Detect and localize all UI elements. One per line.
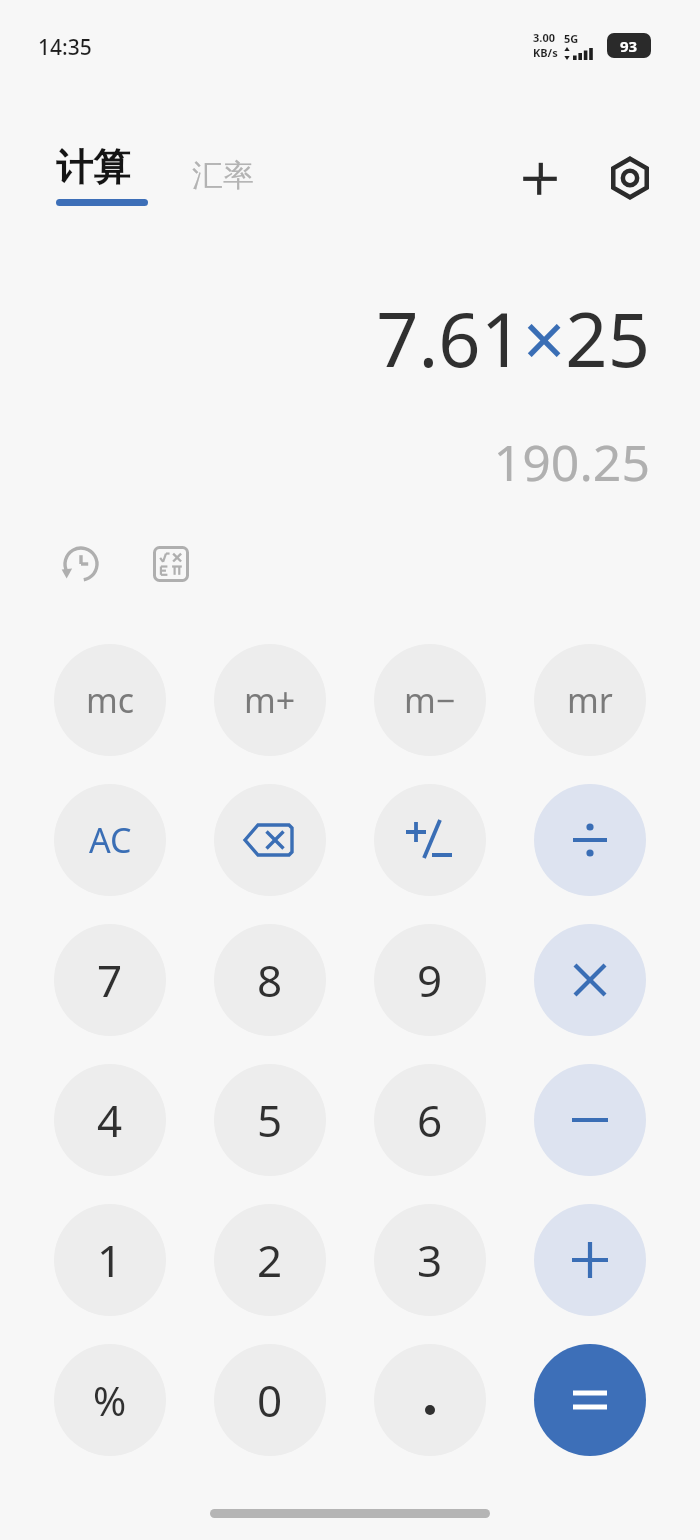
staticText: 计算	[56, 144, 130, 191]
button[interactable]: 9	[374, 924, 486, 1036]
button[interactable]: 2	[214, 1204, 326, 1316]
staticText: AC	[89, 817, 132, 863]
button[interactable]: 0	[214, 1344, 326, 1456]
staticText: mc	[86, 677, 135, 723]
staticText: 5	[257, 1090, 283, 1150]
button[interactable]: Multiply	[534, 924, 646, 1036]
button[interactable]: Toggle sign	[374, 784, 486, 896]
staticText: 7.61×25	[376, 288, 650, 389]
button[interactable]: 7	[54, 924, 166, 1036]
staticText: 190.25	[493, 428, 650, 496]
staticText: 4	[97, 1090, 123, 1150]
button[interactable]: 3	[374, 1204, 486, 1316]
button[interactable]: Add	[534, 1204, 646, 1316]
button[interactable]: %	[54, 1344, 166, 1456]
staticText: 3	[417, 1230, 443, 1290]
button[interactable]: Divide	[534, 784, 646, 896]
staticText: 0	[257, 1370, 283, 1430]
button[interactable]: mc	[54, 644, 166, 756]
staticText: KB/s	[533, 45, 558, 60]
staticText: 9	[417, 950, 443, 1010]
staticText: 7	[97, 950, 123, 1010]
button[interactable]: Settings	[598, 146, 662, 210]
button[interactable]: Unit converter	[508, 146, 572, 210]
button[interactable]: m−	[374, 644, 486, 756]
button[interactable]: m+	[214, 644, 326, 756]
staticText: 6	[417, 1090, 443, 1150]
button[interactable]: Backspace	[214, 784, 326, 896]
staticText: m−	[404, 677, 456, 723]
staticText: %	[93, 1373, 127, 1427]
button[interactable]: 计算	[50, 140, 154, 210]
button[interactable]: Subtract	[534, 1064, 646, 1176]
staticText: 汇率	[192, 156, 254, 195]
staticText: 5G	[564, 31, 579, 46]
staticText: m+	[244, 677, 296, 723]
button[interactable]: 1	[54, 1204, 166, 1316]
button[interactable]: 8	[214, 924, 326, 1036]
button[interactable]: mr	[534, 644, 646, 756]
button[interactable]: AC	[54, 784, 166, 896]
staticText: 93	[620, 36, 638, 56]
staticText: mr	[567, 677, 613, 723]
staticText: 8	[257, 950, 283, 1010]
button[interactable]: 汇率	[186, 152, 260, 199]
staticText: 14:35	[38, 33, 92, 62]
staticText: 1	[97, 1230, 123, 1290]
button[interactable]: Decimal point	[374, 1344, 486, 1456]
button[interactable]: 5	[214, 1064, 326, 1176]
button[interactable]: History	[50, 533, 112, 595]
button[interactable]: 4	[54, 1064, 166, 1176]
button[interactable]: 6	[374, 1064, 486, 1176]
staticText: 2	[257, 1230, 283, 1290]
button[interactable]: Scientific mode	[140, 533, 202, 595]
staticText: 3.00	[533, 30, 555, 45]
button[interactable]: Equals	[534, 1344, 646, 1456]
